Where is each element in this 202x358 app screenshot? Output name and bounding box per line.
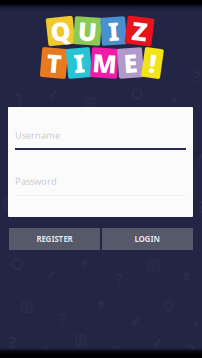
button[interactable]: LOGIN xyxy=(102,228,193,250)
staticText: M xyxy=(92,46,116,80)
staticText: Z xyxy=(132,14,147,48)
staticText: ? xyxy=(8,332,16,353)
staticText: ! xyxy=(149,46,156,80)
staticText: REGISTER xyxy=(36,234,72,244)
staticText: T xyxy=(46,46,61,80)
staticText: LOGIN xyxy=(134,234,160,244)
staticText: ? xyxy=(186,340,193,358)
staticText: I xyxy=(73,46,84,80)
staticText: Username xyxy=(15,129,60,141)
staticText: ? xyxy=(15,87,23,110)
staticText: I xyxy=(108,14,119,48)
staticText: Password xyxy=(15,175,57,187)
button[interactable]: REGISTER xyxy=(9,228,100,250)
staticText: E xyxy=(123,46,137,80)
staticText: Q xyxy=(50,14,70,48)
staticText: U xyxy=(78,14,97,48)
